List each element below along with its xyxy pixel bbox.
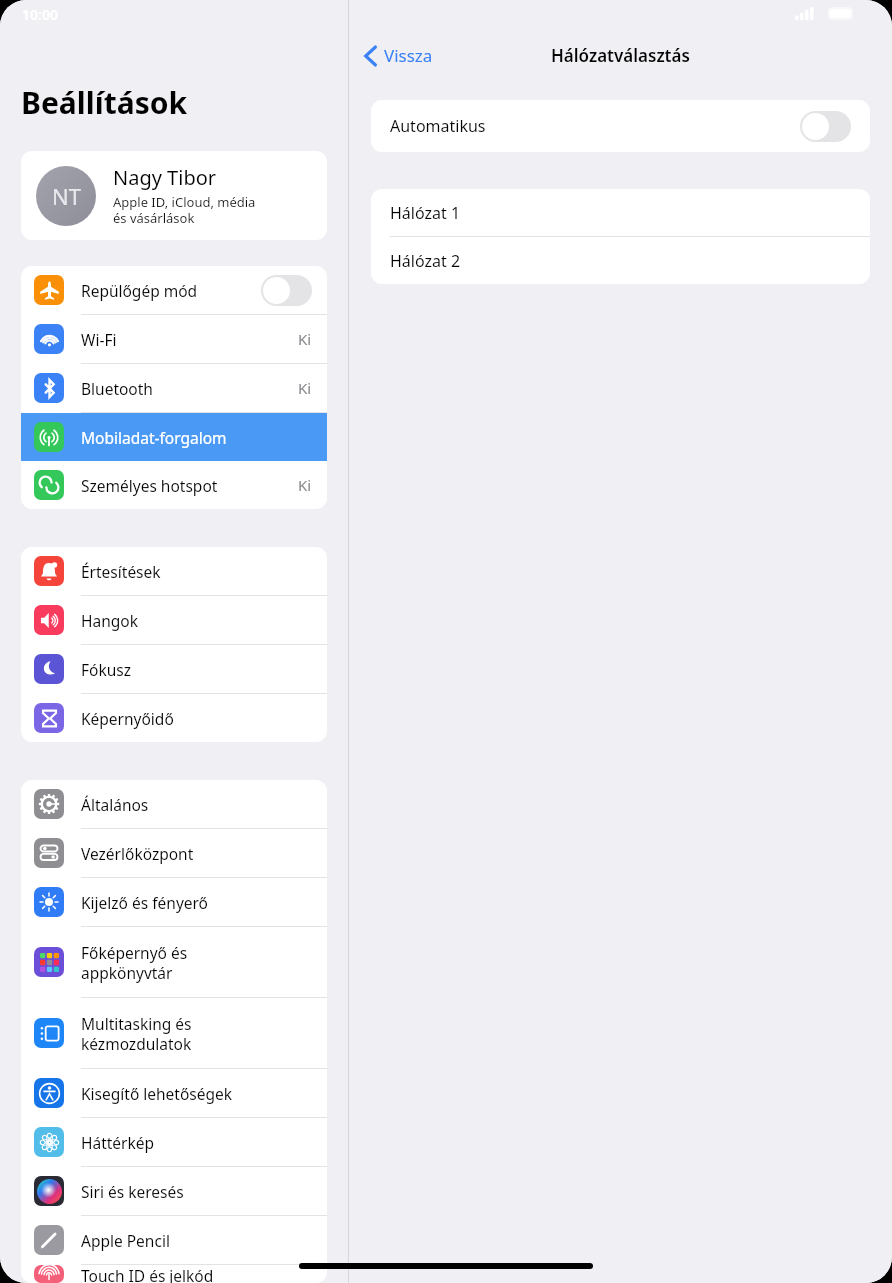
staticText: Kisegítő lehetőségek bbox=[81, 1083, 312, 1104]
staticText: Általános bbox=[81, 794, 312, 815]
staticText: Értesítések bbox=[81, 561, 312, 582]
staticText: Hálózatválasztás bbox=[551, 44, 690, 67]
staticText: Vissza bbox=[384, 44, 433, 67]
staticText: Vezérlőközpont bbox=[81, 843, 312, 864]
button[interactable]: Képernyőidő bbox=[21, 694, 327, 742]
staticText: Kijelző és fényerő bbox=[81, 892, 312, 913]
button[interactable]: Kapcsoló bbox=[800, 111, 851, 142]
staticText: Ki bbox=[298, 378, 312, 398]
button[interactable]: Touch ID és jelkód bbox=[21, 1265, 327, 1283]
button[interactable]: Kijelző és fényerő bbox=[21, 878, 327, 927]
staticText: Képernyőidő bbox=[81, 708, 312, 729]
button[interactable]: NT bbox=[21, 151, 327, 240]
button[interactable]: Hangok bbox=[21, 596, 327, 645]
staticText: Wi-Fi bbox=[81, 329, 298, 350]
button[interactable]: Háttérkép bbox=[21, 1118, 327, 1167]
button[interactable]: Hálózat 1 bbox=[371, 189, 870, 237]
button[interactable]: Repülőgép mód bbox=[21, 266, 327, 315]
button[interactable]: Apple Pencil bbox=[21, 1216, 327, 1265]
staticText: Hálózat 1 bbox=[390, 202, 461, 224]
button[interactable]: Automatikus bbox=[371, 100, 870, 152]
staticText: Főképernyő és appkönyvtár bbox=[81, 942, 312, 983]
button[interactable]: Siri és keresés bbox=[21, 1167, 327, 1216]
button[interactable]: Általános bbox=[21, 780, 327, 829]
staticText: Hálózat 2 bbox=[390, 250, 461, 272]
staticText: Fókusz bbox=[81, 659, 312, 680]
button[interactable]: Wi-Fi bbox=[21, 315, 327, 364]
button[interactable]: Értesítések bbox=[21, 547, 327, 596]
staticText: Háttérkép bbox=[81, 1132, 312, 1153]
staticText: Személyes hotspot bbox=[81, 475, 298, 496]
staticText: Bluetooth bbox=[81, 378, 298, 399]
staticText: Mobiladat-forgalom bbox=[81, 427, 312, 448]
button[interactable]: Vissza bbox=[349, 40, 443, 71]
staticText: Hangok bbox=[81, 610, 312, 631]
staticText: Automatikus bbox=[390, 115, 800, 137]
button[interactable]: Multitasking és kézmozdulatok bbox=[21, 998, 327, 1069]
staticText: Apple ID, iCloud, média és vásárlások bbox=[113, 193, 256, 227]
staticText: Siri és keresés bbox=[81, 1181, 312, 1202]
button[interactable]: Fókusz bbox=[21, 645, 327, 694]
staticText: NT bbox=[52, 181, 81, 211]
staticText: 10:00 bbox=[22, 5, 58, 24]
staticText: Repülőgép mód bbox=[81, 280, 261, 301]
button[interactable]: Vezérlőközpont bbox=[21, 829, 327, 878]
button[interactable]: Főképernyő és appkönyvtár bbox=[21, 927, 327, 998]
button[interactable]: Bluetooth bbox=[21, 364, 327, 413]
staticText: Nagy Tibor bbox=[113, 164, 217, 191]
staticText: Multitasking és kézmozdulatok bbox=[81, 1013, 312, 1054]
button[interactable]: Kisegítő lehetőségek bbox=[21, 1069, 327, 1118]
button[interactable]: Személyes hotspot bbox=[21, 461, 327, 509]
button[interactable]: Kapcsoló bbox=[261, 275, 312, 306]
button[interactable]: Hálózat 2 bbox=[371, 237, 870, 284]
button[interactable]: Mobiladat-forgalom bbox=[21, 413, 327, 461]
staticText: Touch ID és jelkód bbox=[81, 1265, 312, 1283]
staticText: Ki bbox=[298, 329, 312, 349]
staticText: Apple Pencil bbox=[81, 1230, 312, 1251]
staticText: Ki bbox=[298, 475, 312, 495]
staticText: Beállítások bbox=[21, 82, 188, 123]
